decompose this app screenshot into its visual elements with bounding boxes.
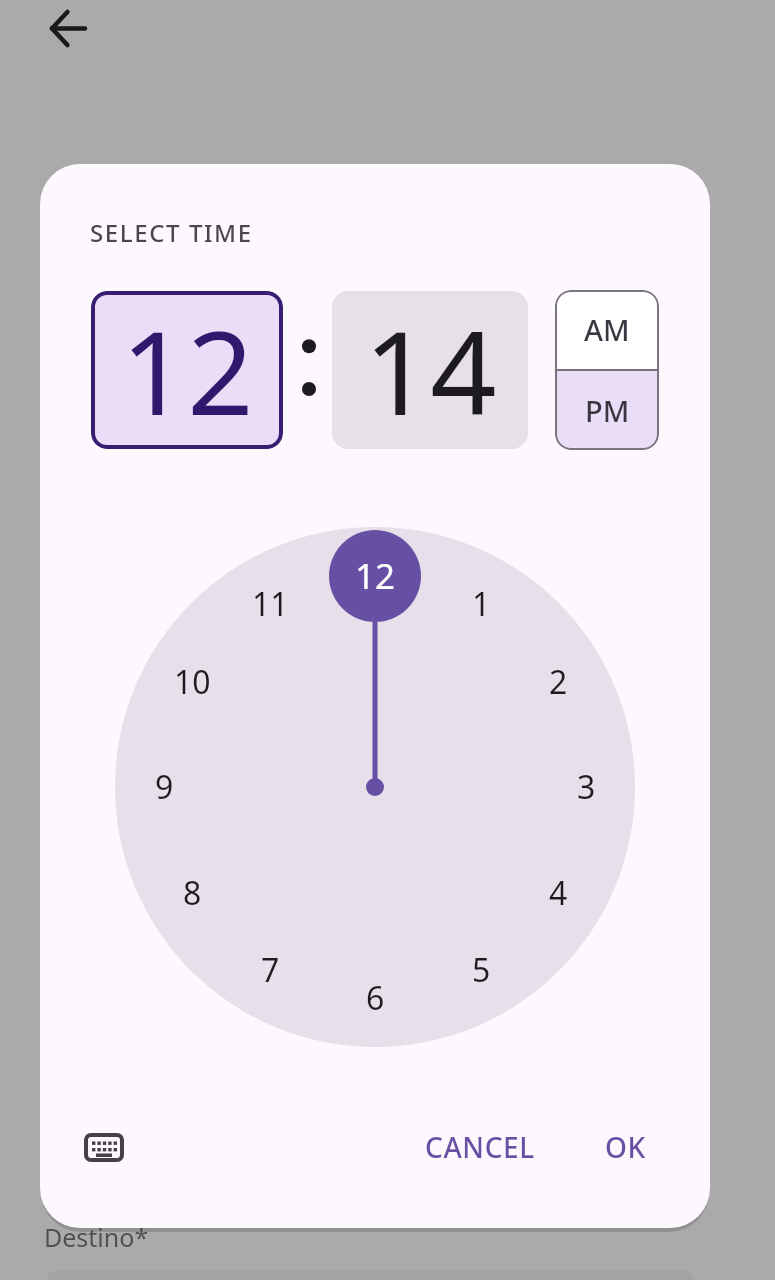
staticText: 7 [261, 948, 280, 992]
staticText: 14 [364, 291, 497, 449]
staticText: 11 [252, 582, 289, 626]
staticText: 12 [355, 552, 396, 600]
button[interactable] [40, 0, 96, 56]
button[interactable]: 10 [162, 657, 222, 707]
button[interactable]: 1 [451, 579, 511, 629]
button[interactable]: 8 [162, 868, 222, 918]
button[interactable]: 7 [240, 945, 300, 995]
staticText: 8 [183, 871, 202, 915]
button[interactable]: CANCEL [415, 1122, 545, 1172]
staticText: 2 [549, 660, 568, 704]
staticText: 12 [121, 291, 254, 449]
button[interactable]: 14 [332, 291, 528, 449]
staticText: 6 [366, 976, 385, 1020]
button[interactable]: 12 [91, 291, 283, 449]
staticText: Destino* [44, 1220, 149, 1254]
button[interactable]: 11 [240, 579, 300, 629]
staticText: AM [584, 310, 630, 349]
staticText: 4 [549, 871, 568, 915]
button[interactable]: PM [555, 371, 659, 450]
button[interactable]: AM [555, 290, 659, 369]
button[interactable]: 12 [345, 551, 405, 601]
staticText: 5 [472, 948, 491, 992]
staticText: PM [585, 391, 630, 430]
staticText: 9 [155, 765, 174, 809]
button[interactable]: 2 [528, 657, 588, 707]
button[interactable]: 5 [451, 945, 511, 995]
button[interactable] [74, 1119, 134, 1175]
staticText: 1 [472, 582, 491, 626]
staticText: 10 [174, 660, 211, 704]
staticText: CANCEL [425, 1128, 535, 1166]
staticText: OK [605, 1128, 646, 1166]
button[interactable]: 9 [134, 762, 194, 812]
button[interactable]: 6 [345, 973, 405, 1023]
staticText: 3 [577, 765, 596, 809]
button[interactable]: 4 [528, 868, 588, 918]
button[interactable]: 3 [556, 762, 616, 812]
button[interactable]: OK [585, 1122, 665, 1172]
staticText: SELECT TIME [90, 216, 253, 249]
